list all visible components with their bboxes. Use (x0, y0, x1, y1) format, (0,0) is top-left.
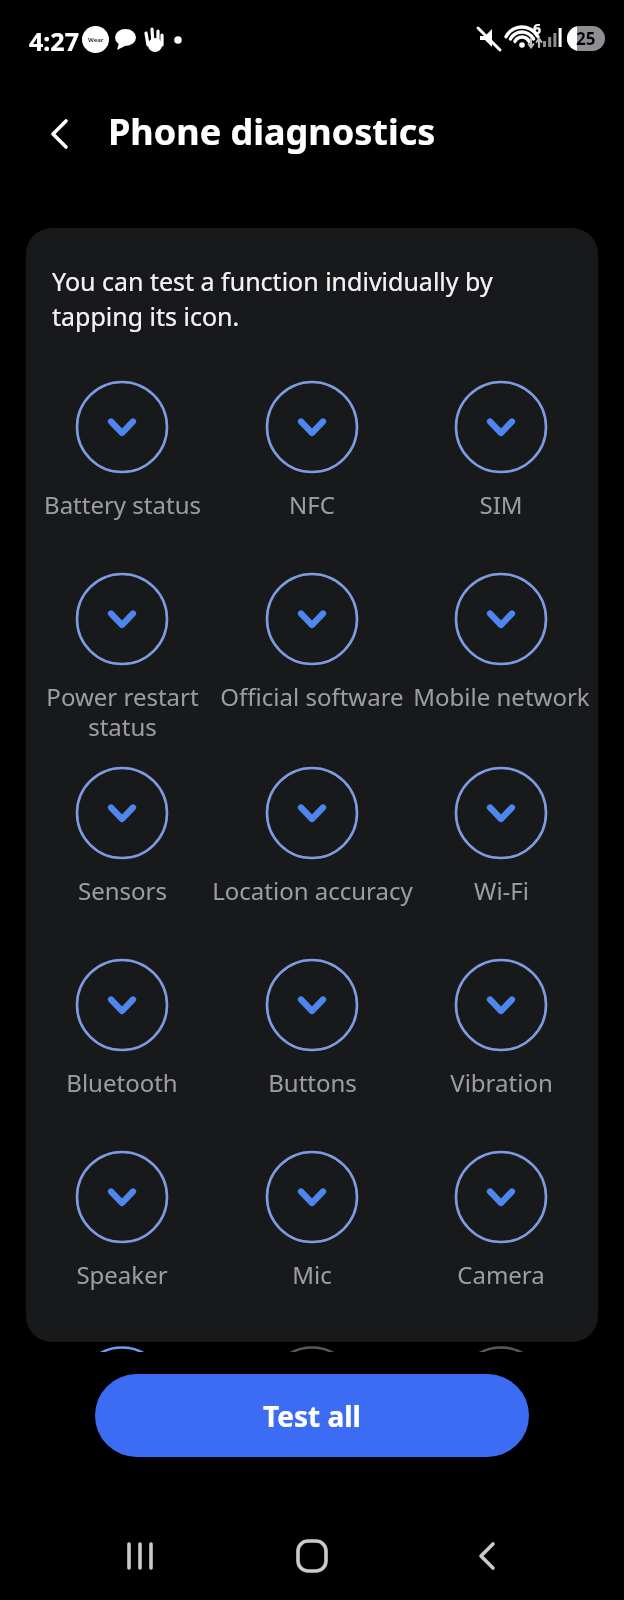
staticText: Vibration (450, 1066, 553, 1099)
button[interactable] (454, 380, 548, 474)
button[interactable] (455, 1524, 519, 1588)
button[interactable] (75, 380, 169, 474)
button[interactable]: Test all (95, 1374, 529, 1457)
staticText: Bluetooth (66, 1066, 178, 1099)
button[interactable] (454, 1150, 548, 1244)
staticText: Power restart status (46, 680, 199, 743)
staticText: Wi-Fi (474, 874, 529, 907)
staticText: Official software (220, 680, 404, 713)
staticText: 4:27 (29, 24, 79, 58)
button[interactable] (265, 1150, 359, 1244)
staticText: 25 (576, 27, 596, 50)
staticText: Mobile network (413, 680, 590, 713)
staticText: 6 (533, 19, 542, 38)
staticText: You can test a function individually by … (52, 264, 493, 334)
staticText: Wear (88, 36, 104, 44)
staticText: Location accuracy (212, 874, 413, 907)
staticText: Mic (292, 1258, 332, 1291)
button[interactable] (75, 1150, 169, 1244)
staticText: Battery status (44, 488, 201, 521)
button[interactable] (265, 380, 359, 474)
button[interactable] (265, 766, 359, 860)
staticText: Speaker (76, 1258, 168, 1291)
button[interactable] (265, 958, 359, 1052)
button[interactable] (454, 958, 548, 1052)
button[interactable] (454, 766, 548, 860)
button[interactable] (108, 1524, 172, 1588)
button[interactable] (36, 110, 84, 158)
staticText: SIM (479, 488, 523, 521)
button[interactable] (280, 1524, 344, 1588)
button[interactable] (454, 572, 548, 666)
button[interactable] (75, 958, 169, 1052)
staticText: Buttons (268, 1066, 357, 1099)
button[interactable] (75, 766, 169, 860)
staticText: Test all (263, 1397, 361, 1435)
staticText: Camera (457, 1258, 545, 1291)
button[interactable] (265, 572, 359, 666)
staticText: NFC (289, 488, 335, 521)
staticText: Phone diagnostics (108, 107, 436, 156)
staticText: Sensors (78, 874, 167, 907)
button[interactable] (75, 572, 169, 666)
